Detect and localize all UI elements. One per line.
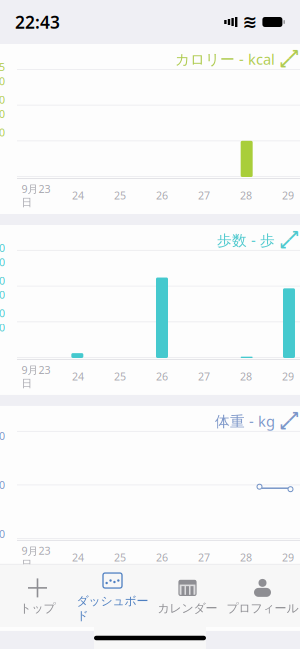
- staticText: 9000: [0, 241, 5, 269]
- staticText: 歩数 - 歩: [217, 230, 275, 250]
- staticText: カロリー - kcal: [175, 49, 275, 69]
- staticText: 1500: [0, 60, 5, 88]
- staticText: 3000: [0, 306, 5, 334]
- staticText: 24: [72, 550, 84, 564]
- staticText: 27: [198, 188, 210, 202]
- staticText: 50: [0, 478, 5, 492]
- staticText: 9月23日: [21, 182, 50, 209]
- staticText: 500: [0, 125, 5, 153]
- staticText: 9月23日: [21, 363, 50, 390]
- staticText: 26: [156, 369, 168, 383]
- staticText: 血糖値 - mg/dL: [172, 591, 275, 610]
- staticText: 60: [0, 429, 5, 443]
- staticText: 体重 - kg: [215, 411, 275, 431]
- staticText: プロフィール: [226, 601, 298, 616]
- staticText: 9月23日: [21, 544, 50, 571]
- staticText: ↗: [286, 227, 299, 245]
- staticText: ダッシュボード: [76, 593, 148, 623]
- staticText: 25: [114, 188, 126, 202]
- staticText: 25: [114, 369, 126, 383]
- staticText: 29: [282, 188, 294, 202]
- staticText: 26: [156, 550, 168, 564]
- staticText: 1000: [0, 92, 5, 121]
- staticText: 6000: [0, 273, 5, 302]
- button[interactable]: Expand 歩数 - 歩 chart: [279, 230, 299, 250]
- staticText: 28: [240, 188, 252, 202]
- staticText: 22:43: [15, 10, 60, 33]
- button[interactable]: トップ: [0, 572, 75, 620]
- staticText: ↙: [278, 54, 291, 72]
- staticText: 24: [72, 188, 84, 202]
- button[interactable]: Expand 体重 - kg chart: [279, 411, 299, 431]
- staticText: トップ: [19, 601, 55, 616]
- staticText: ↗: [286, 46, 299, 64]
- staticText: 40: [0, 527, 5, 541]
- staticText: 27: [198, 550, 210, 564]
- button[interactable]: プロフィール: [225, 572, 300, 620]
- staticText: 29: [282, 550, 294, 564]
- staticText: 28: [240, 369, 252, 383]
- staticText: 28: [240, 550, 252, 564]
- staticText: 29: [282, 369, 294, 383]
- staticText: ↗: [286, 408, 299, 426]
- staticText: 24: [72, 369, 84, 383]
- staticText: 27: [198, 369, 210, 383]
- staticText: ≋: [242, 12, 257, 32]
- button[interactable]: ダッシュボード: [75, 564, 150, 627]
- staticText: ↙: [278, 235, 291, 253]
- staticText: 25: [114, 550, 126, 564]
- button[interactable]: カレンダー: [150, 572, 225, 620]
- staticText: ↗: [286, 587, 299, 605]
- button[interactable]: Expand カロリー - kcal chart: [279, 49, 299, 69]
- staticText: ↙: [278, 595, 291, 613]
- staticText: 26: [156, 188, 168, 202]
- button[interactable]: Expand 血糖値 - mg/dL chart: [279, 590, 299, 610]
- staticText: ↙: [278, 416, 291, 434]
- staticText: カレンダー: [157, 601, 217, 616]
